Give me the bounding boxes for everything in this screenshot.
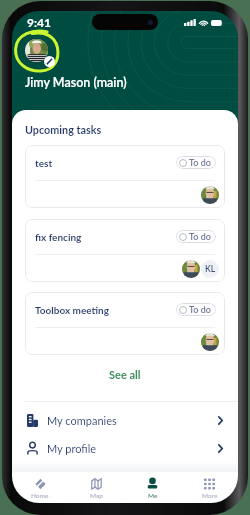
staticText: To do: [189, 304, 211, 315]
staticText: To do: [189, 157, 211, 168]
staticText: Upcoming tasks: [25, 123, 102, 136]
staticText: My profile: [47, 442, 97, 455]
staticText: fix fencing: [35, 231, 82, 243]
staticText: Map: [90, 492, 103, 500]
button[interactable]: To do: [176, 303, 216, 316]
button[interactable]: More: [181, 472, 238, 503]
button[interactable]: Me: [124, 472, 181, 503]
staticText: Toolbox meeting: [35, 304, 109, 316]
button[interactable]: To do: [176, 230, 216, 243]
button[interactable]: My profile: [12, 434, 238, 462]
button[interactable]: Map: [68, 472, 124, 503]
button[interactable]: To do: [176, 156, 216, 169]
staticText: Jimy Mason (main): [25, 75, 127, 90]
button[interactable]: Toolbox meeting: [25, 292, 225, 355]
staticText: My companies: [47, 414, 117, 427]
button[interactable]: test: [25, 145, 225, 208]
button[interactable]: My companies: [12, 402, 238, 434]
staticText: 9:41: [27, 15, 51, 29]
button[interactable]: Profile photo: [25, 39, 48, 62]
staticText: Home: [31, 492, 49, 500]
button[interactable]: fix fencing: [25, 219, 225, 282]
staticText: KL: [205, 264, 216, 274]
staticText: test: [35, 157, 53, 169]
button[interactable]: Edit profile photo: [44, 56, 55, 67]
button[interactable]: Home: [12, 472, 68, 503]
staticText: More: [202, 492, 218, 500]
staticText: To do: [189, 231, 211, 242]
staticText: Me: [148, 492, 158, 500]
button[interactable]: See all: [95, 365, 155, 384]
staticText: See all: [109, 368, 141, 381]
